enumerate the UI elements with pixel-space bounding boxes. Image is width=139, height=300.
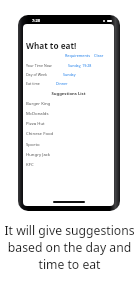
button[interactable]: Hungry Jack — [23, 151, 114, 161]
button[interactable]: Clear — [94, 53, 104, 58]
staticText: Your Time Now — [26, 63, 52, 68]
button[interactable]: Requirements — [65, 53, 91, 58]
staticText: Sunday — [63, 72, 76, 77]
staticText: Day of Week — [26, 72, 47, 77]
staticText: Sunday, 19:28 — [68, 63, 92, 68]
button[interactable]: KFC — [23, 161, 114, 171]
staticText: What to eat! — [26, 40, 77, 51]
staticText: Pizza Hut — [26, 120, 45, 126]
button[interactable]: Burger King — [23, 100, 114, 110]
staticText: based on the day and — [0, 239, 139, 256]
staticText: Burger King — [26, 100, 51, 106]
staticText: 7:28 — [32, 18, 40, 23]
button[interactable]: McDonalds — [23, 110, 114, 120]
staticText: time to eat — [0, 256, 139, 273]
staticText: Hungry Jack — [26, 151, 51, 157]
staticText: Requirements — [65, 53, 91, 58]
staticText: Eat time — [26, 81, 40, 86]
staticText: Chinese Food — [26, 130, 54, 136]
staticText: Sporto — [26, 141, 40, 147]
staticText: Dinner — [56, 81, 68, 86]
button[interactable]: Pizza Hut — [23, 120, 114, 130]
staticText: It will give suggestions — [0, 222, 139, 239]
staticText: Clear — [94, 53, 104, 58]
staticText: McDonalds — [26, 110, 49, 116]
button[interactable]: Chinese Food — [23, 130, 114, 140]
staticText: Suggestions List — [23, 91, 114, 97]
button[interactable]: Sporto — [23, 141, 114, 151]
staticText: KFC — [26, 161, 34, 167]
